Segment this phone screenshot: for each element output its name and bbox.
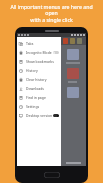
staticText: Show bookmarks [26, 59, 54, 64]
staticText: Settings [26, 104, 40, 109]
button[interactable]: Toggle Desktop version [53, 114, 59, 117]
staticText: Find in page [26, 95, 46, 100]
staticText: Tabs [26, 41, 34, 46]
button[interactable]: Settings [17, 102, 61, 111]
button[interactable]: Incognito Mode [17, 48, 61, 57]
button[interactable]: Clear history [17, 75, 61, 84]
button[interactable]: Downloads [17, 84, 61, 93]
staticText: Incognito Mode [26, 50, 52, 55]
button[interactable]: Find in page [17, 93, 61, 102]
staticText: Desktop version [26, 113, 53, 118]
staticText: History [26, 68, 38, 73]
staticText: Clear history [26, 77, 47, 82]
staticText: Downloads [26, 86, 45, 91]
button[interactable]: Show bookmarks [17, 57, 61, 66]
button[interactable]: History [17, 66, 61, 75]
button[interactable]: Tabs [17, 39, 61, 48]
staticText: All important menus are here and open wi… [4, 3, 99, 24]
button[interactable]: Toggle Incognito Mode [53, 51, 59, 54]
button[interactable]: Desktop version [17, 111, 61, 120]
button[interactable]: Home [44, 172, 60, 178]
